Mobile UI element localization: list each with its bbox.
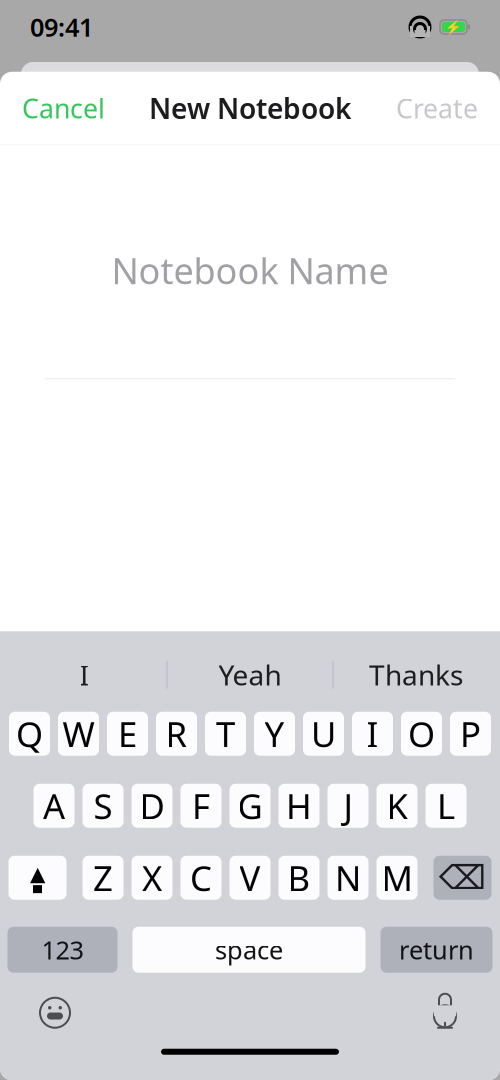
staticText: return [399, 933, 474, 966]
button[interactable]: R [156, 712, 197, 756]
staticText: U [311, 711, 336, 757]
staticText: X [142, 855, 162, 901]
button[interactable]: Q [9, 712, 50, 756]
button[interactable]: space [132, 927, 365, 973]
button[interactable]: Emoji [28, 991, 82, 1035]
staticText: Notebook Name [111, 246, 388, 294]
staticText: C [190, 855, 212, 901]
staticText: ⌫ [439, 859, 486, 897]
staticText: New Notebook [149, 90, 351, 127]
staticText: D [139, 783, 164, 829]
button[interactable]: A [33, 784, 74, 828]
button[interactable]: Z [82, 856, 123, 900]
staticText: W [62, 711, 94, 757]
staticText: E [118, 711, 137, 757]
staticText: P [460, 711, 481, 757]
staticText: Thanks [369, 656, 463, 693]
button[interactable]: Thanks [333, 647, 498, 703]
staticText: Y [264, 711, 284, 757]
staticText: O [408, 711, 435, 757]
button[interactable]: H [278, 784, 319, 828]
button[interactable]: W [58, 712, 99, 756]
button[interactable]: B [278, 856, 319, 900]
staticText: F [192, 783, 210, 829]
staticText: J [343, 783, 352, 829]
button[interactable]: Create [374, 76, 500, 140]
staticText: A [43, 783, 65, 829]
staticText: I [366, 711, 378, 757]
staticText: M [381, 855, 412, 901]
staticText: Z [93, 855, 113, 901]
staticText: Create [396, 90, 478, 126]
staticText: N [335, 855, 361, 901]
button[interactable]: Dictation [418, 991, 472, 1035]
button[interactable]: L [425, 784, 466, 828]
button[interactable]: Delete [433, 856, 491, 900]
staticText: 123 [41, 933, 83, 966]
button[interactable]: P [450, 712, 491, 756]
staticText: T [216, 711, 235, 757]
staticText: L [437, 783, 455, 829]
button[interactable]: Notebook Name [0, 250, 500, 379]
button[interactable]: M [376, 856, 417, 900]
staticText: Yeah [218, 656, 281, 693]
staticText: G [237, 783, 262, 829]
staticText: I [79, 656, 88, 693]
button[interactable]: F [180, 784, 221, 828]
button[interactable]: V [229, 856, 270, 900]
staticText: 09:41 [30, 10, 93, 44]
staticText: K [386, 783, 407, 829]
button[interactable]: C [180, 856, 221, 900]
button[interactable]: 123 [7, 927, 117, 973]
staticText: Q [16, 711, 43, 757]
button[interactable]: J [327, 784, 368, 828]
staticText: ▲ [30, 862, 45, 885]
button[interactable]: G [229, 784, 270, 828]
button[interactable]: return [380, 927, 492, 973]
button[interactable]: Y [254, 712, 295, 756]
button[interactable]: Yeah [167, 647, 332, 703]
staticText: Cancel [22, 90, 105, 126]
button[interactable]: Shift [8, 856, 66, 900]
button[interactable]: U [303, 712, 344, 756]
button[interactable]: I [1, 647, 166, 703]
button[interactable]: K [376, 784, 417, 828]
staticText: H [286, 783, 312, 829]
staticText: B [287, 855, 310, 901]
staticText: R [165, 711, 187, 757]
staticText: ⚡ [445, 19, 462, 35]
button[interactable]: N [327, 856, 368, 900]
button[interactable]: X [131, 856, 172, 900]
button[interactable]: T [205, 712, 246, 756]
button[interactable]: S [82, 784, 123, 828]
staticText: V [239, 855, 260, 901]
button[interactable]: I [352, 712, 393, 756]
button[interactable]: O [401, 712, 442, 756]
staticText: space [215, 933, 283, 966]
button[interactable]: E [107, 712, 148, 756]
staticText: S [93, 783, 112, 829]
button[interactable]: D [131, 784, 172, 828]
button[interactable]: Cancel [0, 76, 127, 140]
